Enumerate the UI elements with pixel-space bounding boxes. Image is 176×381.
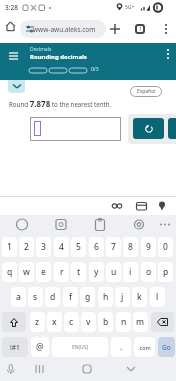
button[interactable]: m xyxy=(133,312,148,332)
button[interactable] xyxy=(2,312,26,332)
staticText: . xyxy=(120,341,123,353)
button[interactable]: z xyxy=(30,312,45,332)
staticText: g xyxy=(85,291,91,303)
button[interactable]: r xyxy=(54,262,69,282)
staticText: e xyxy=(41,266,46,278)
button[interactable] xyxy=(8,80,25,93)
button[interactable]: e xyxy=(36,262,51,282)
staticText: z xyxy=(35,316,40,328)
staticText: 3 xyxy=(41,241,46,253)
button[interactable]: t xyxy=(71,262,86,282)
button[interactable] xyxy=(164,48,172,60)
button[interactable]: x xyxy=(47,312,62,332)
staticText: p xyxy=(163,266,169,278)
button[interactable]: g xyxy=(80,287,95,307)
button[interactable]: s xyxy=(28,287,43,307)
staticText: x xyxy=(52,316,57,328)
button[interactable]: .com xyxy=(134,337,155,357)
staticText: 3:28 xyxy=(5,3,18,12)
button[interactable]: . xyxy=(111,337,131,357)
button[interactable]: n xyxy=(116,312,131,332)
button[interactable]: www-awu.aleks.com xyxy=(20,20,106,38)
staticText: www-awu.aleks.com xyxy=(33,25,96,34)
staticText: 7 xyxy=(111,241,116,253)
button[interactable]: i xyxy=(123,262,138,282)
staticText: n xyxy=(121,316,127,328)
staticText: .com xyxy=(138,344,151,351)
staticText: !#1 xyxy=(10,343,20,352)
button[interactable]: d xyxy=(45,287,60,307)
button[interactable]: 7 xyxy=(106,237,121,257)
button[interactable]: j xyxy=(115,287,130,307)
staticText: @ xyxy=(36,341,44,353)
button[interactable]: a xyxy=(11,287,26,307)
button[interactable]: 2 xyxy=(19,237,34,257)
staticText: 0/3 xyxy=(91,66,99,73)
button[interactable]: 0 xyxy=(158,237,173,257)
button[interactable]: p xyxy=(158,262,173,282)
button[interactable]: 5 xyxy=(71,237,86,257)
staticText: b xyxy=(103,316,109,328)
staticText: 8 xyxy=(128,241,133,253)
button[interactable] xyxy=(151,312,174,332)
button[interactable]: y xyxy=(89,262,104,282)
button[interactable]: b xyxy=(98,312,113,332)
button[interactable] xyxy=(30,117,121,141)
button[interactable]: EN(US) xyxy=(52,337,108,357)
button[interactable]: c xyxy=(64,312,79,332)
button[interactable]: @ xyxy=(31,337,49,357)
button[interactable]: h xyxy=(98,287,113,307)
staticText: Round 7.878 to the nearest tenth. xyxy=(9,98,112,109)
button[interactable]: !#1 xyxy=(2,337,28,357)
staticText: y xyxy=(94,266,99,278)
staticText: Decimals xyxy=(30,46,52,53)
button[interactable]: 1 xyxy=(2,237,17,257)
button[interactable] xyxy=(5,21,16,32)
button[interactable]: v xyxy=(81,312,96,332)
staticText: 1 xyxy=(139,26,142,33)
staticText: i xyxy=(129,266,132,278)
staticText: c xyxy=(69,316,74,328)
button[interactable]: Español xyxy=(130,86,162,97)
button[interactable] xyxy=(168,118,176,139)
staticText: h xyxy=(103,291,109,303)
staticText: d xyxy=(50,291,56,303)
staticText: w xyxy=(23,266,30,278)
button[interactable] xyxy=(110,24,120,34)
staticText: j xyxy=(121,291,124,303)
staticText: 6 xyxy=(94,241,99,253)
button[interactable] xyxy=(9,52,18,60)
staticText: k xyxy=(137,291,142,303)
button[interactable]: u xyxy=(106,262,121,282)
button[interactable]: 6 xyxy=(89,237,104,257)
button[interactable]: l xyxy=(150,287,165,307)
button[interactable]: q xyxy=(2,262,17,282)
button[interactable]: f xyxy=(63,287,78,307)
staticText: Rounding decimals xyxy=(30,53,87,61)
button[interactable]: 9 xyxy=(141,237,156,257)
button[interactable]: w xyxy=(19,262,34,282)
staticText: EN(US) xyxy=(72,344,88,351)
button[interactable]: o xyxy=(141,262,156,282)
button[interactable]: 1 xyxy=(135,24,145,34)
button[interactable]: k xyxy=(132,287,147,307)
staticText: a xyxy=(16,291,21,303)
button[interactable] xyxy=(133,118,164,139)
staticText: 1 xyxy=(7,241,12,253)
staticText: 4 xyxy=(59,241,64,253)
button[interactable] xyxy=(162,23,170,35)
button[interactable]: 3 xyxy=(36,237,51,257)
staticText: 2 xyxy=(24,241,29,253)
staticText: m xyxy=(136,316,145,328)
staticText: v xyxy=(86,316,91,328)
staticText: q xyxy=(7,266,13,278)
staticText: 9 xyxy=(146,241,151,253)
staticText: Go xyxy=(162,343,171,352)
button[interactable]: Go xyxy=(158,337,175,357)
staticText: o xyxy=(146,266,152,278)
staticText: s xyxy=(33,291,38,303)
staticText: l xyxy=(156,291,159,303)
button[interactable]: 8 xyxy=(123,237,138,257)
button[interactable]: 4 xyxy=(54,237,69,257)
staticText: f xyxy=(69,291,73,303)
